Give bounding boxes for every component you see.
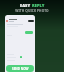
button[interactable]: SEND NOW [6, 65, 34, 72]
button[interactable]: Attach photo [20, 56, 22, 58]
staticText: SEND NOW [12, 67, 29, 71]
button[interactable]: Message bubble [25, 31, 33, 34]
staticText: REPLY [32, 3, 45, 8]
staticText: EASY [20, 3, 32, 8]
button[interactable]: More options [28, 20, 34, 22]
staticText: WITH QUICK PHOTO [15, 9, 49, 13]
